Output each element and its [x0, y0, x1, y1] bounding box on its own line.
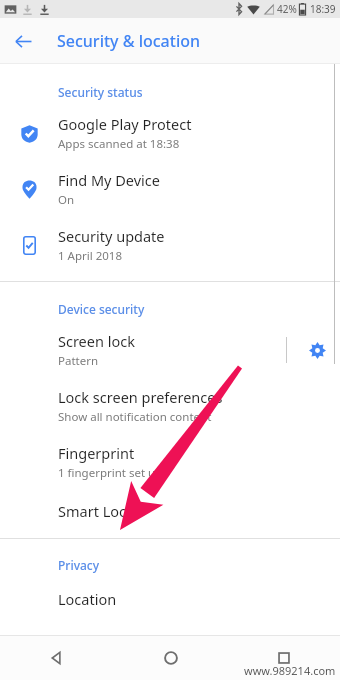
button[interactable]: Find My Device	[0, 161, 340, 217]
button[interactable]: Location	[0, 578, 340, 620]
staticText: Device security	[58, 301, 145, 317]
staticText: Pattern	[58, 353, 99, 369]
button[interactable]: Lock screen preferences	[0, 378, 340, 434]
staticText: Smart Lock	[58, 501, 134, 521]
button[interactable]: Security update	[0, 217, 340, 273]
staticText: 42%	[277, 2, 297, 16]
button[interactable]: Fingerprint	[0, 434, 340, 490]
button[interactable]: Screen lock settings	[295, 332, 331, 368]
staticText: Security status	[58, 84, 143, 100]
staticText: www.989214.com	[244, 663, 336, 678]
staticText: On	[58, 192, 75, 208]
staticText: Google Play Protect	[58, 114, 192, 134]
staticText: Find My Device	[58, 170, 160, 190]
button[interactable]: Recents	[227, 636, 340, 680]
staticText: Security & location	[57, 30, 201, 52]
staticText: Lock screen preferences	[58, 387, 223, 407]
staticText: Apps scanned at 18:38	[58, 136, 180, 152]
staticText: 18:39	[310, 2, 336, 16]
button[interactable]: Smart Lock	[0, 490, 340, 532]
staticText: 1 April 2018	[58, 248, 122, 264]
staticText: Screen lock	[58, 331, 135, 351]
staticText: Security update	[58, 226, 165, 246]
staticText: Location	[58, 589, 117, 609]
button[interactable]: Google Play Protect	[0, 105, 340, 161]
staticText: 1 fingerprint set up	[58, 465, 163, 481]
button[interactable]: Back	[6, 24, 40, 58]
staticText: Show all notification content	[58, 409, 212, 425]
button[interactable]: Screen lock	[0, 322, 340, 378]
button[interactable]: Home	[114, 636, 227, 680]
staticText: Privacy	[58, 557, 100, 573]
button[interactable]: Back	[0, 636, 114, 680]
staticText: Fingerprint	[58, 443, 135, 463]
